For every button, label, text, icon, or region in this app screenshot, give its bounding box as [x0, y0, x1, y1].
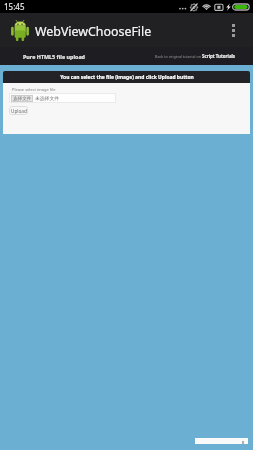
staticText: Script Tutorials — [202, 53, 236, 59]
staticText: Please select image file — [12, 87, 56, 92]
staticText: 选择文件 — [13, 96, 32, 102]
staticText: Upload — [11, 108, 27, 114]
button[interactable]: More options — [221, 13, 246, 47]
button[interactable]: Upload — [9, 106, 28, 115]
staticText: Pure HTML5 file upload — [23, 53, 86, 60]
staticText: WebViewChooseFile — [35, 23, 152, 40]
staticText: You can select the file (image) and clic… — [60, 74, 194, 81]
staticText: 15:45 — [4, 1, 25, 12]
button[interactable]: Text field — [195, 438, 248, 444]
button[interactable]: 选择文件 — [9, 93, 116, 103]
staticText: 未选择文件 — [35, 95, 59, 101]
staticText: Back to original tutorial on — [155, 54, 202, 59]
